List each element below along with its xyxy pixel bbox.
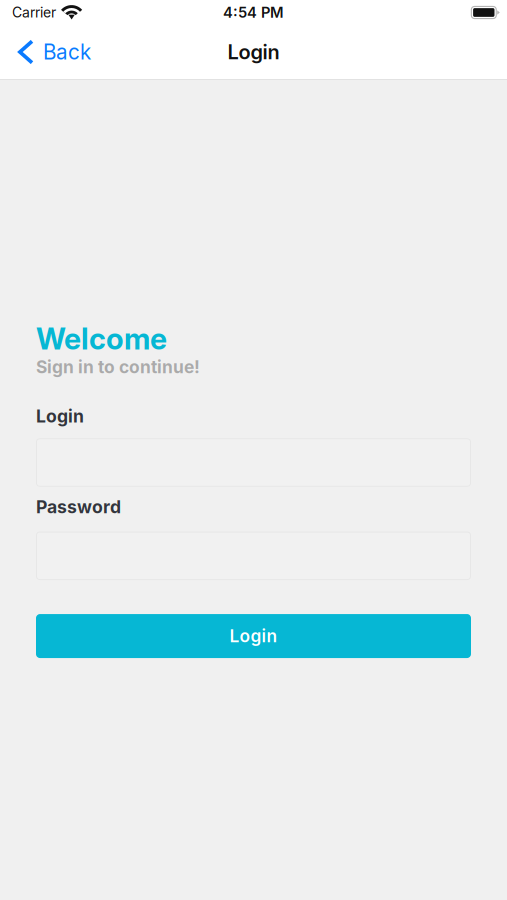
- staticText: Password: [36, 496, 121, 518]
- staticText: Welcome: [36, 321, 167, 356]
- button[interactable]: Back: [0, 30, 101, 74]
- staticText: Login: [36, 405, 84, 427]
- button[interactable]: Login: [36, 614, 471, 658]
- staticText: Sign in to continue!: [36, 356, 200, 377]
- staticText: Back: [43, 39, 91, 64]
- staticText: Login: [229, 626, 277, 647]
- staticText: 4:54 PM: [223, 4, 284, 21]
- staticText: Carrier: [12, 4, 56, 21]
- staticText: Login: [227, 40, 279, 64]
